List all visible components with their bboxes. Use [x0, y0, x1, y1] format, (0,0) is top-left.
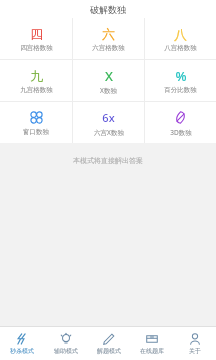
- staticText: 九宫格数独: [20, 86, 53, 94]
- staticText: 八宫格数独: [164, 44, 197, 52]
- staticText: 四: [30, 26, 43, 42]
- staticText: 百分比数独: [164, 86, 197, 94]
- button[interactable]: 六: [73, 18, 144, 59]
- staticText: 6x: [102, 110, 115, 125]
- staticText: 六宫X数独: [94, 128, 124, 137]
- staticText: 本模式将直接解出答案: [73, 156, 143, 165]
- staticText: 3D数独: [170, 128, 192, 137]
- staticText: 八: [174, 26, 187, 42]
- staticText: 六宫格数独: [92, 44, 125, 52]
- button[interactable]: 九: [0, 60, 72, 101]
- staticText: 窗口数独: [23, 128, 49, 136]
- staticText: 解题模式: [97, 347, 121, 355]
- staticText: 六: [102, 26, 115, 42]
- button[interactable]: 6x: [73, 102, 144, 143]
- staticText: 破解数独: [90, 4, 126, 15]
- other: 在线题库: [146, 333, 158, 345]
- other: 辅助模式: [60, 333, 72, 345]
- staticText: 关于: [189, 347, 201, 355]
- button[interactable]: 关于: [173, 327, 216, 360]
- staticText: 四宫格数独: [20, 44, 53, 52]
- other: 关于: [189, 333, 201, 345]
- button[interactable]: 辅助模式: [44, 327, 87, 360]
- button[interactable]: %: [145, 60, 216, 101]
- button[interactable]: 秒杀模式: [0, 327, 44, 360]
- other: 秒杀模式: [16, 333, 28, 345]
- button[interactable]: 窗口数独: [0, 102, 72, 143]
- button[interactable]: 3D数独: [145, 102, 216, 143]
- staticText: 辅助模式: [54, 347, 78, 355]
- button[interactable]: 四: [0, 18, 72, 59]
- staticText: X数独: [100, 86, 117, 95]
- staticText: 秒杀模式: [10, 347, 34, 355]
- staticText: X: [105, 67, 113, 84]
- staticText: 九: [30, 68, 43, 84]
- staticText: 在线题库: [140, 347, 164, 355]
- other: 解题模式: [103, 333, 115, 345]
- staticText: %: [175, 67, 187, 84]
- button[interactable]: 八: [145, 18, 216, 59]
- button[interactable]: 解题模式: [87, 327, 130, 360]
- button[interactable]: 在线题库: [130, 327, 173, 360]
- button[interactable]: X: [73, 60, 144, 101]
